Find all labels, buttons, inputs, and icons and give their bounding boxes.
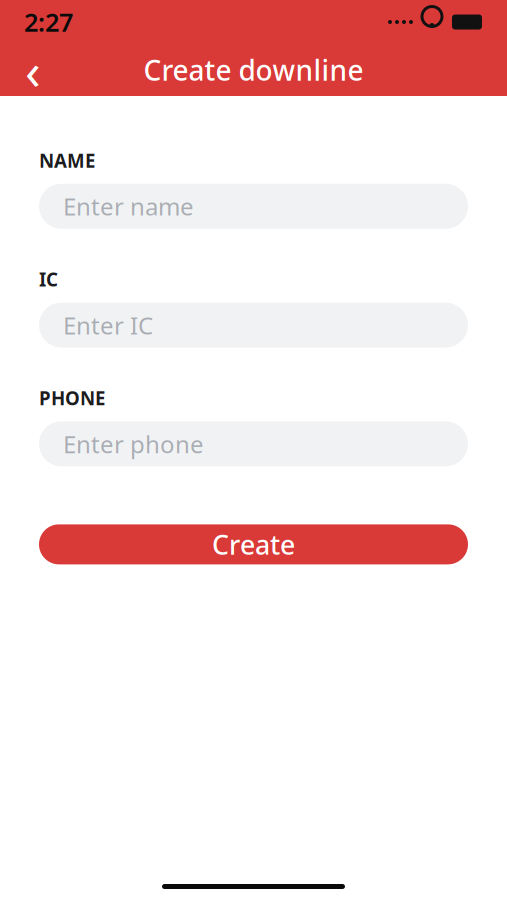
button[interactable]: Create <box>39 524 468 564</box>
staticText: Enter name <box>63 190 194 222</box>
button[interactable]: Back <box>6 44 60 96</box>
staticText: Enter IC <box>63 309 153 341</box>
button[interactable]: Enter IC <box>39 303 468 348</box>
staticText: 2:27 <box>24 5 73 39</box>
staticText: ‹ <box>25 36 41 104</box>
button[interactable]: Enter name <box>39 184 468 229</box>
staticText: Create downline <box>143 51 363 89</box>
staticText: NAME <box>39 148 95 173</box>
staticText: IC <box>39 267 58 292</box>
staticText: PHONE <box>39 386 105 410</box>
staticText: Create <box>212 527 295 562</box>
staticText: Enter phone <box>63 428 204 460</box>
button[interactable]: Enter phone <box>39 421 468 466</box>
